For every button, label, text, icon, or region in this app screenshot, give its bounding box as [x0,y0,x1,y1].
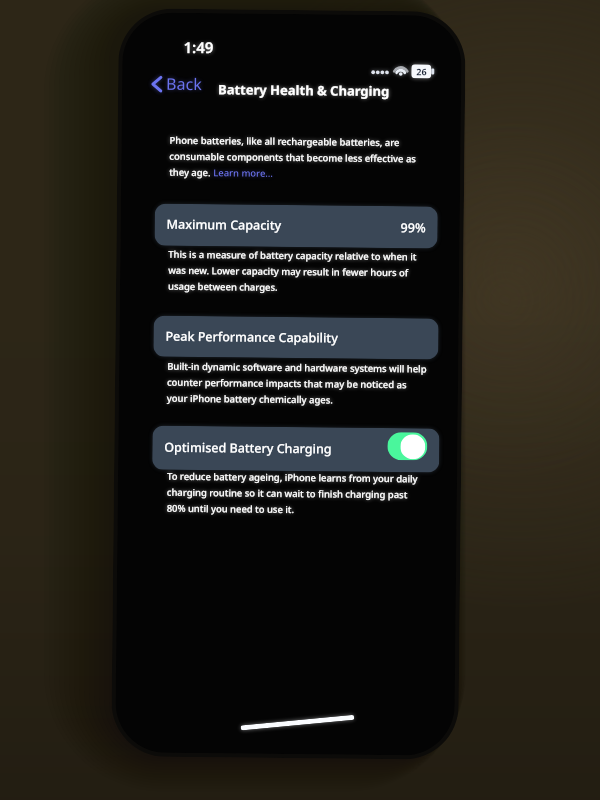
staticText: 1:49 [183,37,214,57]
staticText: Built-in dynamic software and hardware s… [167,360,427,375]
staticText: was new. Lower capacity may result in fe… [168,264,408,279]
staticText: Phone batteries, like all rechargeable b… [169,134,400,149]
button[interactable]: Optimised Battery Charging [152,426,439,473]
staticText: Back [166,73,202,95]
staticText: Phone batteries, like all rechargeable b… [169,134,400,149]
staticText: usage between charges. [168,280,278,294]
staticText: Peak Performance Capability [165,328,339,346]
staticText: your iPhone battery chemically ages. [167,392,334,406]
staticText: charging routine so it can wait to finis… [167,486,408,501]
button[interactable]: Optimised Battery Charging toggle [387,432,427,460]
staticText: your iPhone battery chemically ages. [167,392,334,406]
staticText: they age. [169,166,213,179]
staticText: Battery Health & Charging [218,80,390,100]
staticText: usage between charges. [168,280,278,294]
staticText: they age. [169,166,213,179]
staticText: Battery Health & Charging [218,80,390,100]
staticText: Maximum Capacity [167,216,282,234]
button[interactable]: Maximum Capacity [154,204,438,249]
staticText: 26 [416,65,427,77]
staticText: 26 [416,65,427,77]
staticText: Optimised Battery Charging [164,439,332,457]
staticText: To reduce battery ageing, iPhone learns … [167,470,418,485]
button[interactable]: Optimised Battery Charging [152,426,439,473]
staticText: consumable components that become less e… [169,150,416,165]
staticText: counter performance impacts that may be … [167,376,407,391]
button[interactable]: Learn more… [213,166,273,180]
button[interactable]: Maximum Capacity [154,204,438,249]
staticText: was new. Lower capacity may result in fe… [168,264,408,279]
staticText: 99% [401,219,426,236]
button[interactable]: Optimised Battery Charging toggle [387,432,427,460]
staticText: Peak Performance Capability [165,328,339,346]
staticText: Optimised Battery Charging [164,439,332,457]
button[interactable]: Back [149,70,204,97]
button[interactable]: Peak Performance Capability [153,316,439,360]
staticText: Back [166,73,202,95]
staticText: To reduce battery ageing, iPhone learns … [167,470,418,485]
staticText: 99% [401,219,426,236]
staticText: charging routine so it can wait to finis… [167,486,408,501]
staticText: counter performance impacts that may be … [167,376,407,391]
button[interactable]: Back [149,70,204,97]
staticText: 1:49 [183,37,214,57]
staticText: This is a measure of battery capacity re… [168,248,417,263]
staticText: Maximum Capacity [167,216,282,234]
staticText: 80% until you need to use it. [167,502,295,516]
staticText: consumable components that become less e… [169,150,416,165]
button[interactable]: Learn more… [213,166,273,180]
staticText: Built-in dynamic software and hardware s… [167,360,427,375]
staticText: 80% until you need to use it. [167,502,295,516]
staticText: This is a measure of battery capacity re… [168,248,417,263]
button[interactable]: Peak Performance Capability [153,316,439,360]
